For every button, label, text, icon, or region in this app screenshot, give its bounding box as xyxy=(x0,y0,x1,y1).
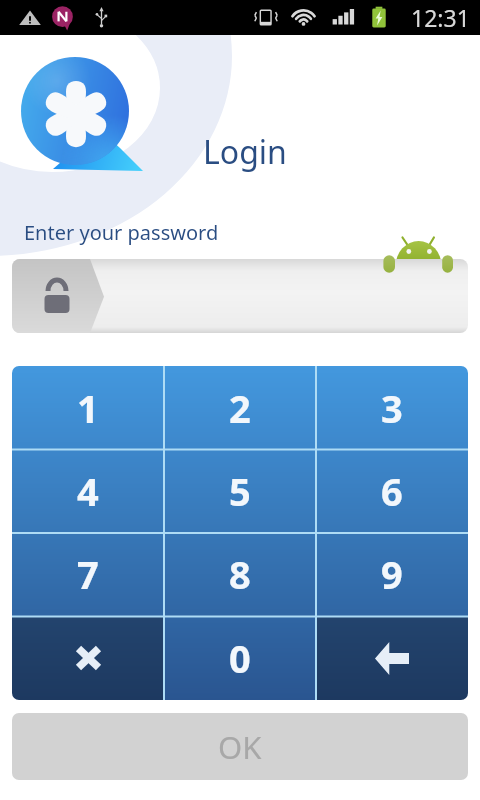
button[interactable]: 9 xyxy=(316,532,468,616)
staticText: 8 xyxy=(229,548,251,600)
button[interactable]: Clear xyxy=(12,616,164,700)
staticText: Enter your password xyxy=(24,219,219,246)
staticText: 5 xyxy=(229,465,251,517)
button[interactable]: 6 xyxy=(316,449,468,532)
button[interactable]: 7 xyxy=(12,532,164,616)
staticText: 1 xyxy=(77,382,99,434)
button[interactable]: 1 xyxy=(12,366,164,449)
button[interactable]: OK xyxy=(12,713,468,780)
button[interactable]: 8 xyxy=(164,532,316,616)
button[interactable]: 0 xyxy=(164,616,316,700)
button[interactable]: 5 xyxy=(164,449,316,532)
staticText: 2 xyxy=(229,382,251,434)
button[interactable]: 4 xyxy=(12,449,164,532)
staticText: 3 xyxy=(381,382,403,434)
staticText: 4 xyxy=(77,465,99,517)
staticText: 9 xyxy=(381,548,403,600)
staticText: 12:31 xyxy=(411,2,470,33)
staticText: OK xyxy=(218,726,262,768)
button[interactable] xyxy=(12,259,468,333)
button[interactable]: 3 xyxy=(316,366,468,449)
staticText: 7 xyxy=(77,548,99,600)
staticText: 0 xyxy=(229,632,251,684)
staticText: Login xyxy=(203,130,287,174)
button[interactable]: 2 xyxy=(164,366,316,449)
other: Backspace xyxy=(375,642,409,675)
staticText: 6 xyxy=(381,465,403,517)
button[interactable]: Backspace xyxy=(316,616,468,700)
other: Clear xyxy=(75,645,102,671)
